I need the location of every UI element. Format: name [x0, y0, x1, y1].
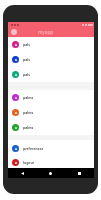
- button[interactable]: pals: [8, 52, 94, 67]
- staticText: palms: [23, 95, 34, 100]
- button[interactable]: palms: [8, 105, 94, 120]
- button[interactable]: palms: [8, 90, 94, 105]
- staticText: pals: [23, 42, 30, 47]
- staticText: palms: [23, 110, 34, 115]
- staticText: palms: [23, 125, 34, 130]
- button[interactable]: Recents: [65, 168, 94, 178]
- staticText: pals: [23, 57, 30, 62]
- button[interactable]: pals: [8, 37, 94, 52]
- staticText: pals: [23, 72, 30, 77]
- button[interactable]: Back: [8, 168, 36, 178]
- staticText: logout: [23, 160, 35, 165]
- staticText: myapp: [38, 29, 54, 35]
- staticText: preferences: [23, 146, 44, 151]
- button[interactable]: preferences: [8, 140, 94, 156]
- button[interactable]: Home: [36, 168, 65, 178]
- button[interactable]: pals: [8, 67, 94, 82]
- button[interactable]: Menu: [11, 29, 17, 35]
- button[interactable]: palms: [8, 120, 94, 135]
- button[interactable]: logout: [8, 156, 94, 168]
